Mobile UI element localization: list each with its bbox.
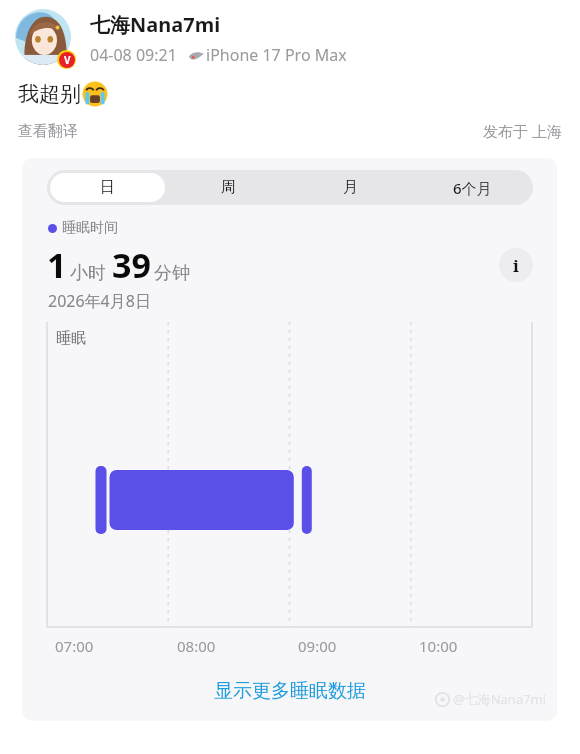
button[interactable]: 信息 [499, 248, 533, 282]
staticText: 睡眠时间 [62, 219, 118, 237]
button[interactable]: 日 [50, 173, 165, 202]
staticText: 08:00 [177, 636, 216, 656]
button[interactable]: 查看翻译 [18, 122, 78, 141]
button[interactable]: 月 [292, 173, 408, 202]
staticText: 分钟 [154, 262, 190, 285]
button[interactable]: 七海Nana7mi [90, 11, 221, 38]
staticText: i [513, 254, 519, 277]
staticText: 查看翻译 [18, 122, 78, 141]
button[interactable]: 日 [22, 158, 557, 721]
staticText: 显示更多睡眠数据 [214, 679, 366, 703]
staticText: 小时 [70, 262, 106, 285]
staticText: 我超别 [18, 81, 81, 107]
staticText: 10:00 [419, 636, 458, 656]
button[interactable]: Avatar [15, 9, 77, 71]
staticText: 1 [47, 242, 67, 288]
staticText: 睡眠 [56, 329, 86, 348]
staticText: 09:00 [298, 636, 337, 656]
button[interactable]: 周 [171, 173, 286, 202]
staticText: @七海Nana7mi [453, 690, 547, 708]
button[interactable]: 显示更多睡眠数据 [22, 679, 557, 703]
staticText: 周 [221, 178, 236, 197]
staticText: 七海Nana7mi [90, 11, 221, 38]
staticText: iPhone 17 Pro Max [206, 44, 347, 66]
staticText: 2026年4月8日 [48, 290, 151, 312]
staticText: 39 [112, 242, 151, 288]
staticText: 月 [343, 178, 358, 197]
staticText: 07:00 [55, 636, 94, 656]
staticText: 日 [100, 178, 115, 197]
staticText: 04-08 09:21 [90, 44, 177, 66]
staticText: 发布于 上海 [483, 121, 562, 141]
staticText: 6个月 [453, 178, 492, 198]
button[interactable]: 6个月 [414, 173, 530, 202]
staticText: V [64, 53, 71, 67]
button[interactable]: iPhone 17 Pro Max [206, 44, 347, 66]
